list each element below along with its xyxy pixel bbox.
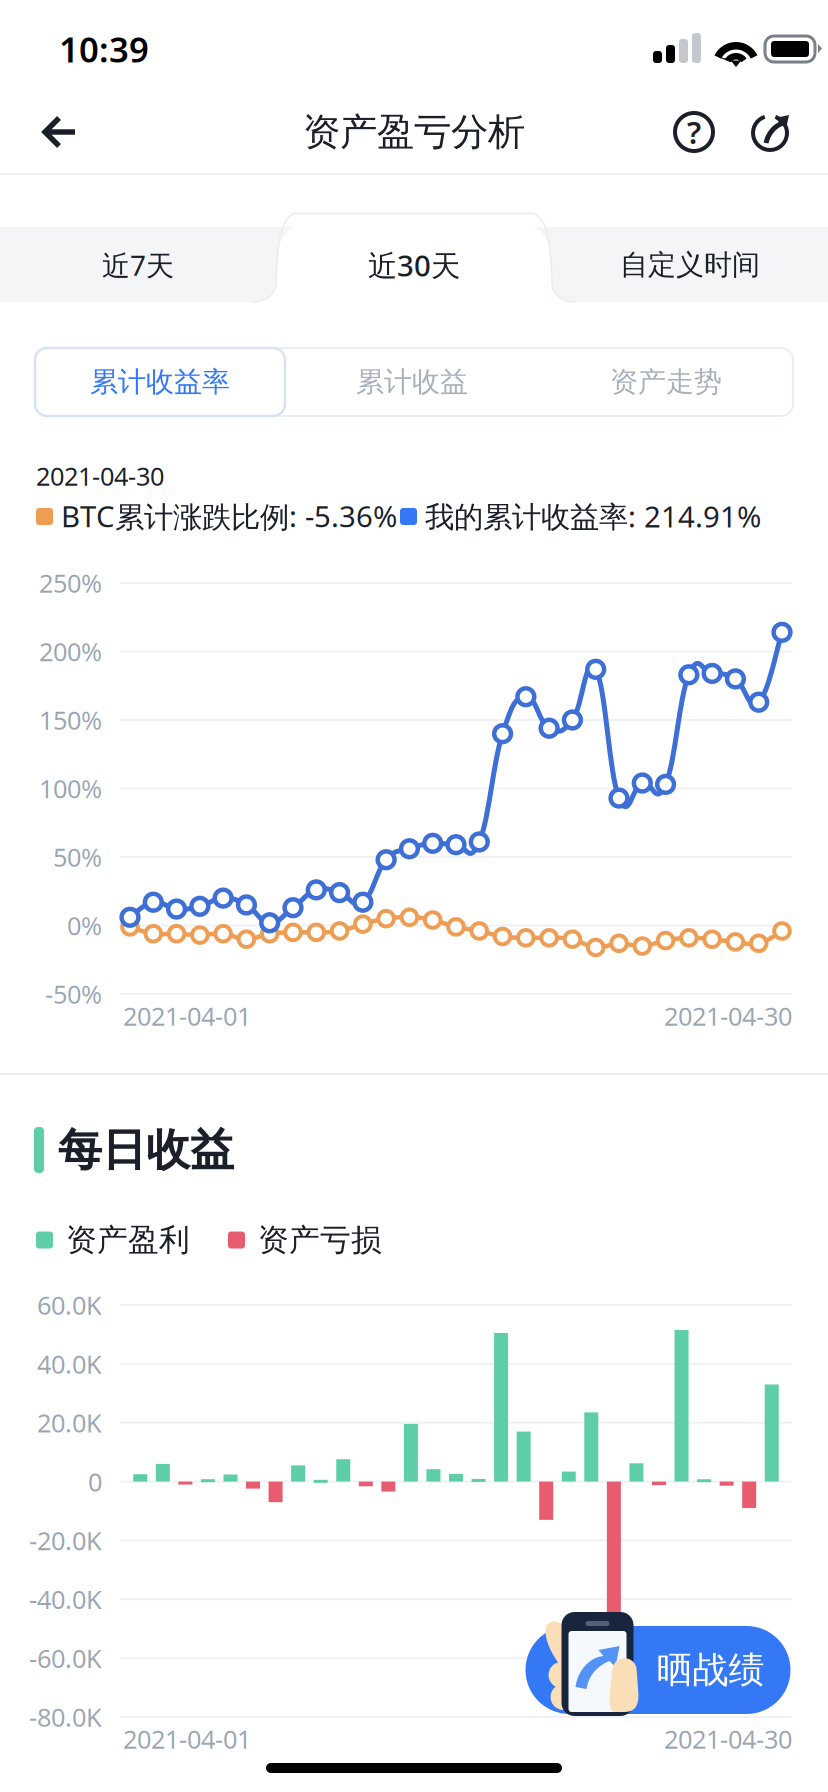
staticText: 2021-04-30 <box>664 999 792 1033</box>
staticText: 累计收益 <box>356 365 468 399</box>
staticText: 近30天 <box>368 245 460 284</box>
staticText: 200% <box>39 635 102 668</box>
button[interactable]: 晒战绩 <box>518 1586 798 1708</box>
staticText: 资产走势 <box>610 365 722 399</box>
staticText: -60.0K <box>29 1641 102 1675</box>
staticText: 100% <box>39 772 102 805</box>
staticText: 50% <box>53 840 102 874</box>
staticText: 250% <box>39 566 102 600</box>
staticText: 150% <box>39 703 102 737</box>
staticText: 0% <box>67 909 102 942</box>
staticText: 近7天 <box>102 246 174 284</box>
staticText: 资产盈亏分析 <box>303 109 525 155</box>
button[interactable]: Help <box>660 92 728 172</box>
staticText: 资产亏损 <box>258 1221 382 1259</box>
staticText: 每日收益 <box>58 1123 234 1177</box>
button[interactable]: 累计收益率 <box>35 348 285 416</box>
button[interactable]: Back <box>20 92 100 172</box>
staticText: 2021-04-01 <box>123 1722 251 1756</box>
staticText: 累计收益率 <box>90 365 230 399</box>
button[interactable]: Share <box>737 92 805 172</box>
staticText: 我的累计收益率: 214.91% <box>425 496 761 535</box>
staticText: 0 <box>88 1465 102 1498</box>
button[interactable]: 资产走势 <box>539 348 793 416</box>
button[interactable]: 近7天 <box>0 228 276 302</box>
button[interactable]: 自定义时间 <box>552 228 828 302</box>
staticText: -50% <box>45 977 102 1011</box>
staticText: -40.0K <box>29 1582 102 1616</box>
staticText: 2021-04-30 <box>664 1722 792 1756</box>
staticText: ? <box>687 112 701 152</box>
staticText: 2021-04-30 <box>36 459 164 493</box>
staticText: -80.0K <box>29 1700 102 1734</box>
staticText: 20.0K <box>37 1406 102 1439</box>
staticText: 40.0K <box>37 1347 102 1381</box>
staticText: 晒战绩 <box>656 1648 764 1692</box>
staticText: 10:39 <box>59 26 149 72</box>
staticText: BTC累计涨跌比例: -5.36% <box>61 496 397 535</box>
staticText: 资产盈利 <box>66 1221 190 1259</box>
staticText: 60.0K <box>37 1288 102 1322</box>
staticText: 自定义时间 <box>620 248 760 282</box>
staticText: -20.0K <box>29 1524 102 1557</box>
button[interactable]: 近30天 <box>276 228 552 302</box>
staticText: 2021-04-01 <box>123 999 251 1033</box>
button[interactable]: 累计收益 <box>285 348 539 416</box>
